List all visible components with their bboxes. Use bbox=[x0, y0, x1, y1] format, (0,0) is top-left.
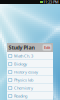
staticText: Biology bbox=[14, 61, 27, 67]
staticText: Study Plan bbox=[8, 44, 34, 51]
staticText: Edit bbox=[44, 45, 50, 50]
staticText: 11:23 PM bbox=[43, 0, 59, 5]
button[interactable]: Biology bbox=[7, 60, 53, 68]
button[interactable]: Edit bbox=[42, 44, 51, 51]
staticText: Chemistry bbox=[14, 85, 33, 91]
button[interactable]: Math Ch. 3 bbox=[7, 52, 53, 60]
staticText: Math Ch. 3 bbox=[14, 53, 33, 59]
button[interactable]: Chemistry bbox=[7, 84, 53, 92]
button[interactable]: Reading bbox=[7, 92, 53, 100]
button[interactable]: Physics lab bbox=[7, 76, 53, 84]
staticText: Reading bbox=[14, 93, 27, 99]
staticText: Physics lab bbox=[14, 77, 33, 83]
button[interactable]: History essay bbox=[7, 68, 53, 76]
staticText: History essay bbox=[14, 69, 38, 75]
